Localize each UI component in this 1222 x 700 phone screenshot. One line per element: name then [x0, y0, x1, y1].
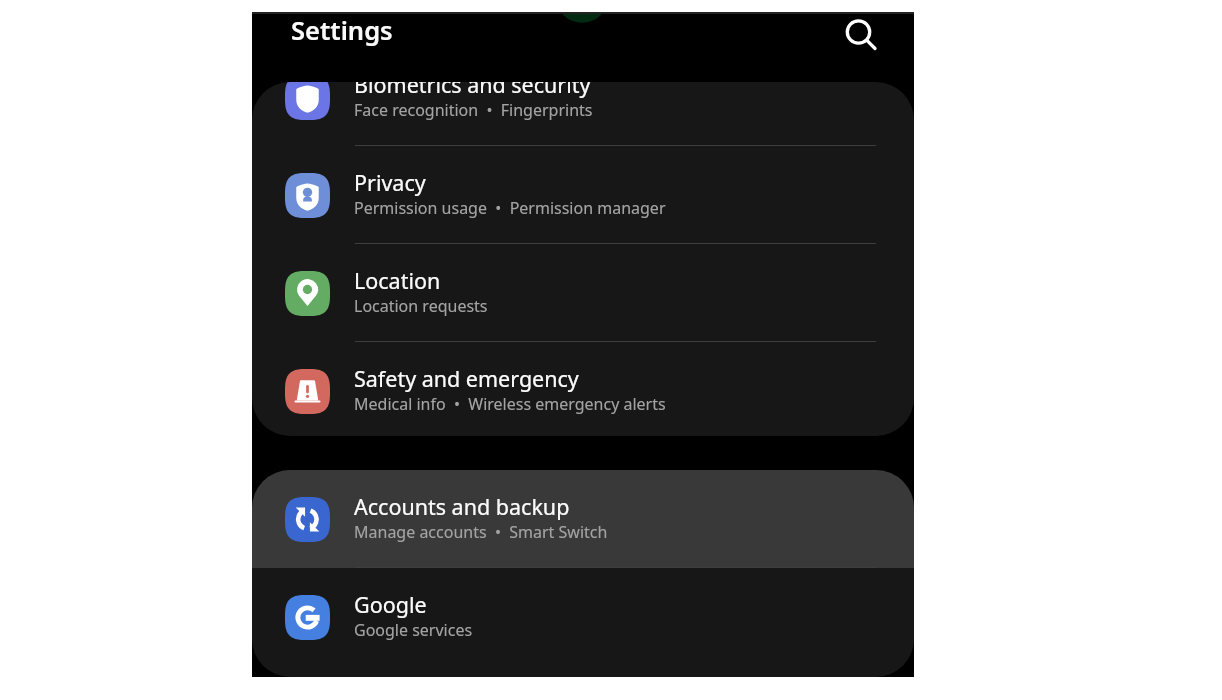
staticText: Biometrics and security [354, 82, 591, 99]
staticText: Accounts and backup [354, 492, 570, 521]
staticText: Settings [291, 13, 393, 48]
button[interactable]: Biometrics and security [252, 82, 914, 146]
button[interactable]: Accounts and backup [252, 470, 914, 568]
staticText: Manage accounts • Smart Switch [354, 521, 608, 543]
staticText: Google [354, 590, 427, 619]
staticText: Permission usage • Permission manager [354, 197, 666, 219]
button[interactable]: Privacy [252, 146, 914, 244]
staticText: Privacy [354, 168, 426, 197]
button[interactable]: Location [252, 244, 914, 342]
staticText: Location requests [354, 295, 488, 317]
button[interactable]: Safety and emergency [252, 342, 914, 436]
button[interactable]: Search [833, 5, 889, 61]
staticText: Medical info • Wireless emergency alerts [354, 393, 666, 415]
staticText: Safety and emergency [354, 364, 579, 393]
staticText: Face recognition • Fingerprints [354, 99, 593, 121]
button[interactable]: Google [252, 568, 914, 666]
staticText: Location [354, 266, 441, 295]
staticText: Google services [354, 619, 473, 641]
